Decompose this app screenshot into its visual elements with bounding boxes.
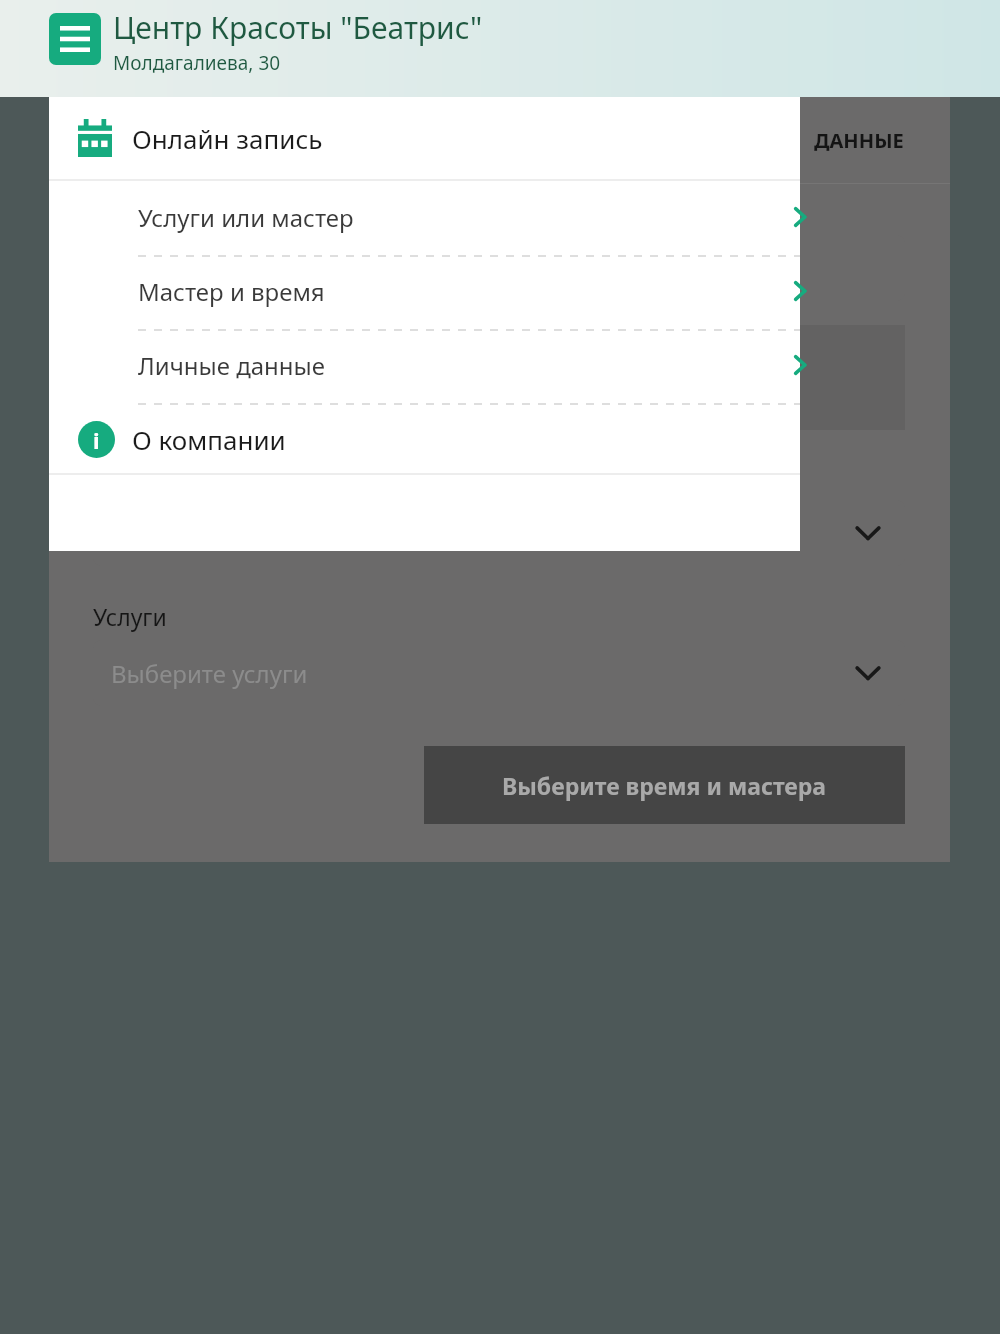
button[interactable]	[93, 235, 905, 301]
button[interactable]: ДАННЫЕ	[49, 97, 950, 183]
button[interactable]: Мастер и время	[49, 257, 800, 331]
staticText: Выберите время и мастера	[502, 770, 827, 801]
staticText: О компании	[132, 422, 286, 457]
button[interactable]	[93, 500, 905, 566]
button[interactable]: Услуги или мастер	[49, 183, 800, 257]
staticText: Выберите услуги	[111, 657, 308, 690]
button[interactable]: Личные данные	[49, 331, 800, 405]
staticText: i	[93, 425, 100, 455]
button[interactable]: i	[49, 405, 800, 473]
button[interactable]: Выберите услуги	[93, 640, 905, 706]
staticText: ДАННЫЕ	[814, 127, 904, 154]
button[interactable]: Menu	[49, 13, 101, 65]
staticText: Молдагалиева, 30	[113, 50, 281, 76]
staticText: Услуги или мастер	[138, 201, 354, 234]
staticText: Мастер и время	[138, 275, 325, 308]
button[interactable]: Онлайн запись	[49, 97, 800, 179]
button[interactable]: Выберите время и мастера	[424, 746, 905, 824]
staticText: Личные данные	[138, 349, 326, 382]
staticText: Онлайн запись	[132, 121, 323, 156]
staticText: Услуги	[93, 601, 167, 632]
staticText: Центр Красоты "Беатрис"	[113, 7, 483, 48]
